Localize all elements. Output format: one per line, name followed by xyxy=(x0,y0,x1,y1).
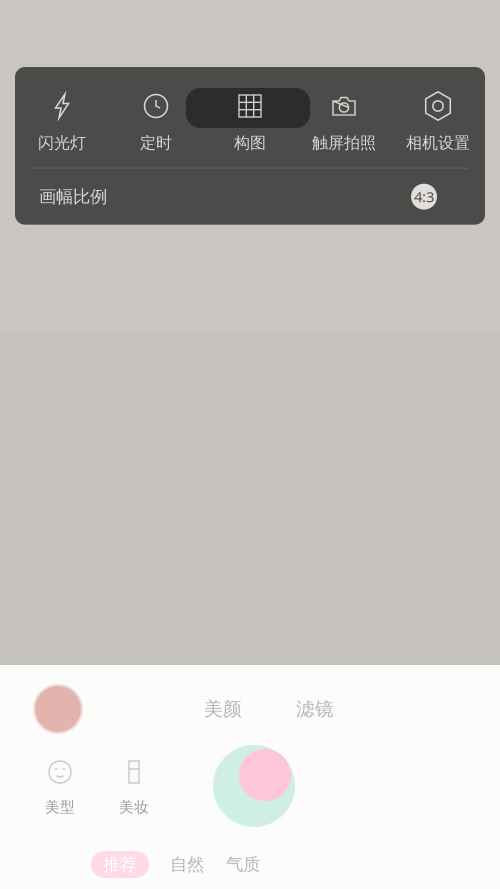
staticText: 滤镜 xyxy=(296,697,334,720)
staticText: 自然 xyxy=(170,854,204,875)
staticText: 推荐 xyxy=(103,854,137,875)
staticText: 美颜 xyxy=(204,697,242,720)
button[interactable]: 推荐 xyxy=(91,851,149,878)
button[interactable]: 美妆 xyxy=(97,756,171,816)
button[interactable]: 气质 xyxy=(217,851,269,878)
staticText: 相机设置 xyxy=(406,133,470,153)
button[interactable]: 美颜 xyxy=(198,693,248,724)
button[interactable]: 滤镜 xyxy=(290,693,340,724)
staticText: 气质 xyxy=(226,854,260,875)
button[interactable]: 美型 xyxy=(23,756,97,816)
staticText: 画幅比例 xyxy=(39,186,107,207)
staticText: 构图 xyxy=(234,133,266,153)
button[interactable]: 画幅比例 xyxy=(15,169,485,225)
staticText: 美妆 xyxy=(119,798,149,816)
button[interactable]: 闪光灯 xyxy=(15,91,109,153)
staticText: 4:3 xyxy=(414,187,434,206)
staticText: 定时 xyxy=(140,133,172,153)
staticText: 触屏拍照 xyxy=(312,133,376,153)
button[interactable]: 个人中心 xyxy=(34,685,82,733)
button[interactable]: 自然 xyxy=(161,851,213,878)
button[interactable]: 妆容预览 xyxy=(213,745,295,827)
staticText: 美型 xyxy=(45,798,75,816)
staticText: 闪光灯 xyxy=(38,133,86,153)
button[interactable]: 触屏拍照 xyxy=(297,91,391,153)
button[interactable]: 相机设置 xyxy=(391,91,485,153)
button[interactable]: 构图 xyxy=(203,91,297,153)
button[interactable]: 定时 xyxy=(109,91,203,153)
